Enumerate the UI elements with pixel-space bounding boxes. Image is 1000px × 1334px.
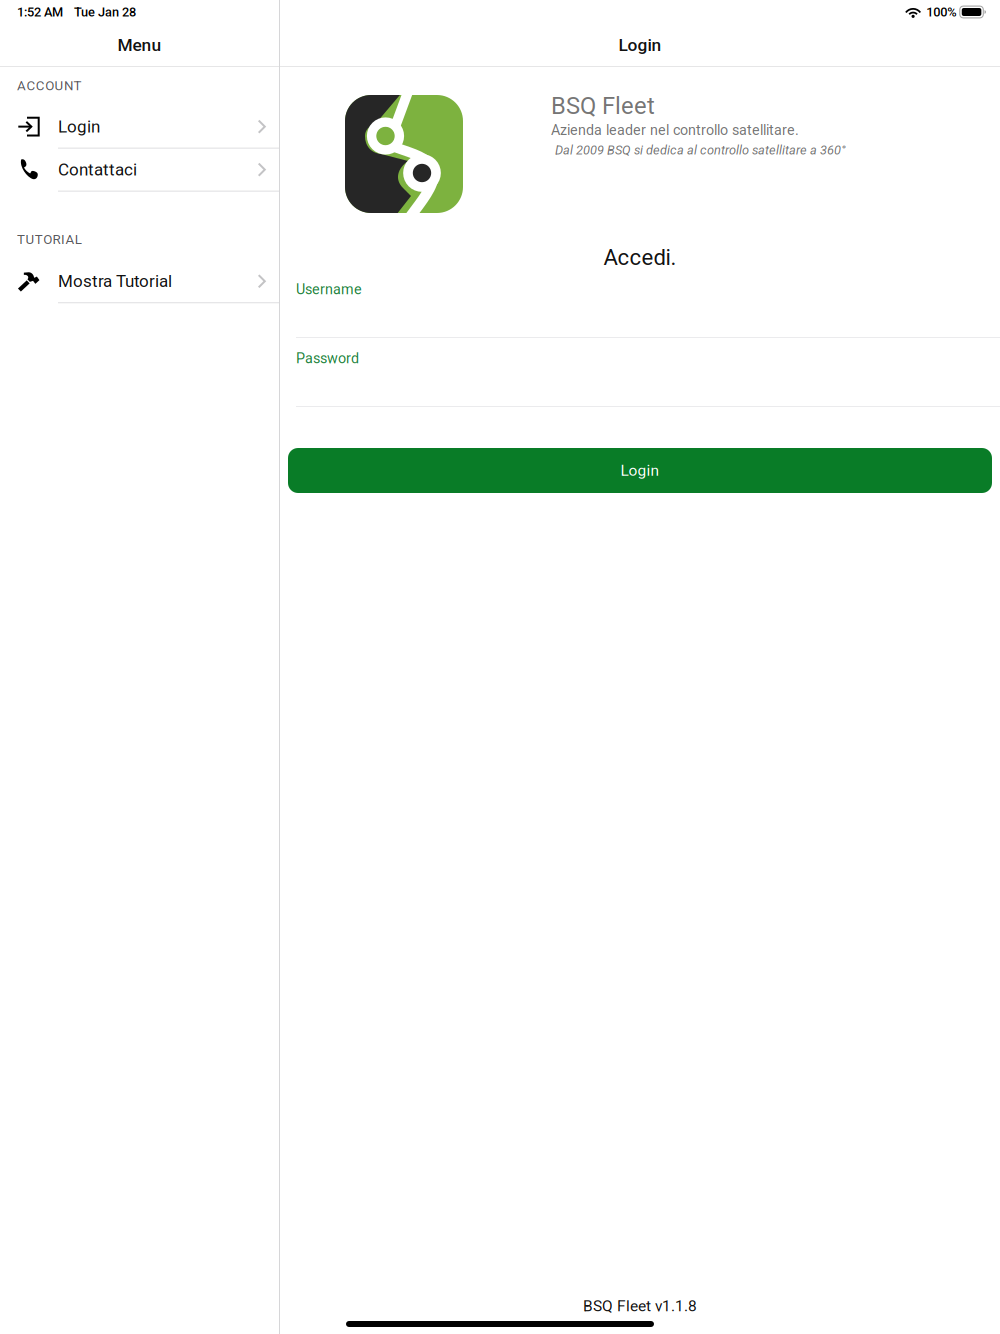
button[interactable]: Mostra Tutorial — [0, 260, 279, 303]
staticText: TUTORIAL — [17, 232, 82, 247]
staticText: 1:52 AM — [17, 4, 63, 19]
button[interactable]: Password — [280, 338, 1000, 407]
staticText: Username — [296, 281, 362, 298]
staticText: Menu — [117, 35, 161, 55]
button[interactable]: Username — [280, 269, 1000, 338]
button[interactable]: Contattaci — [0, 149, 279, 192]
staticText: Contattaci — [58, 160, 137, 180]
staticText: BSQ Fleet v1.1.8 — [583, 1297, 697, 1315]
staticText: 100% — [926, 4, 956, 19]
staticText: ACCOUNT — [17, 78, 81, 94]
staticText: Dal 2009 BSQ si dedica al controllo sate… — [555, 142, 846, 157]
staticText: Azienda leader nel controllo satellitare… — [551, 122, 799, 138]
staticText: Accedi. — [603, 244, 676, 270]
staticText: Mostra Tutorial — [58, 271, 172, 291]
staticText: Login — [58, 117, 100, 137]
staticText: Login — [620, 461, 659, 479]
staticText: Tue Jan 28 — [74, 4, 136, 19]
staticText: Login — [618, 35, 661, 55]
button[interactable]: Login — [288, 448, 992, 493]
staticText: BSQ Fleet — [551, 92, 655, 120]
button[interactable]: Login — [0, 106, 279, 149]
staticText: Password — [296, 350, 359, 367]
